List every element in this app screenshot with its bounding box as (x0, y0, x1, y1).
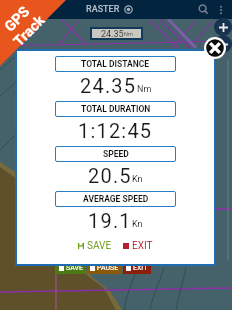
staticText: RASTER (86, 4, 120, 15)
staticText: SAVE (66, 264, 83, 272)
button[interactable]: Zoom out (214, 35, 232, 53)
staticText: 24.35 (101, 29, 124, 38)
staticText: TOTAL DURATION (81, 104, 151, 114)
staticText: 20.5 (88, 164, 132, 187)
staticText: EXIT (132, 240, 153, 252)
staticText: GPS (1, 3, 34, 35)
button[interactable]: More options (213, 2, 229, 18)
staticText: Nm (124, 31, 133, 37)
button[interactable]: EXIT (121, 239, 155, 253)
staticText: SAVE (87, 240, 112, 252)
staticText: TOTAL DISTANCE (81, 59, 150, 69)
button[interactable]: Zoom in (214, 18, 232, 36)
staticText: EXIT (133, 264, 148, 272)
staticText: Nm (137, 84, 152, 95)
button[interactable]: Close (204, 37, 226, 59)
staticText: Track (10, 12, 49, 50)
staticText: 24.35 (80, 74, 137, 97)
button[interactable]: EXIT (126, 262, 148, 274)
button[interactable]: Search (194, 0, 213, 19)
button[interactable]: SAVE (59, 262, 83, 274)
button[interactable]: PAUSE (90, 262, 119, 274)
staticText: PAUSE (97, 264, 119, 272)
staticText: Kn (132, 219, 143, 230)
staticText: 1:12:45 (78, 119, 153, 142)
staticText: 19.1 (88, 209, 132, 232)
staticText: SPEED (103, 149, 129, 159)
staticText: AVERAGE SPEED (83, 194, 149, 204)
button[interactable]: SAVE (76, 239, 114, 253)
staticText: Kn (132, 174, 143, 185)
